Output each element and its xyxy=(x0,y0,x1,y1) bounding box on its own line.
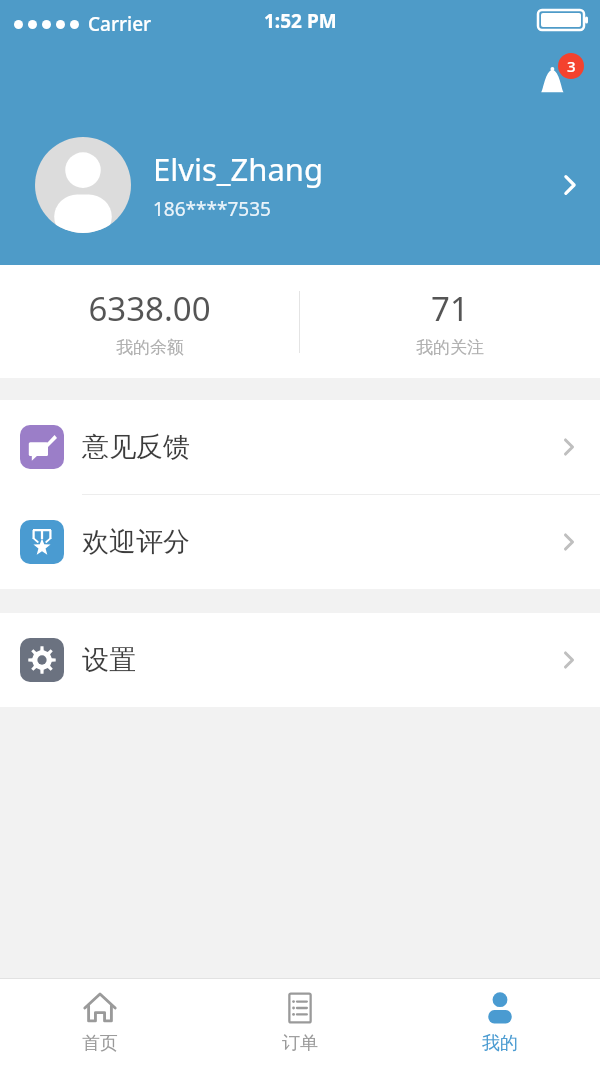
staticText: 欢迎评分 xyxy=(82,525,190,559)
staticText: 设置 xyxy=(82,643,136,677)
staticText: 意见反馈 xyxy=(82,430,190,464)
button[interactable]: Notifications xyxy=(530,53,586,109)
staticText: Elvis_Zhang xyxy=(153,148,324,190)
staticText: 我的 xyxy=(482,1032,518,1055)
staticText: 首页 xyxy=(82,1032,118,1055)
button[interactable]: 71 xyxy=(300,286,600,358)
button[interactable]: 首页 xyxy=(0,978,200,1065)
staticText: 1:52 PM xyxy=(264,8,337,34)
staticText: 71 xyxy=(431,286,469,331)
staticText: 3 xyxy=(567,56,576,76)
button[interactable]: 订单 xyxy=(200,978,400,1065)
staticText: 我的余额 xyxy=(116,337,184,358)
staticText: Carrier xyxy=(88,11,152,37)
button[interactable]: 6338.00 xyxy=(0,286,299,358)
staticText: 186****7535 xyxy=(153,196,271,222)
button[interactable]: Elvis_Zhang xyxy=(0,125,600,245)
button[interactable]: 意见反馈 xyxy=(0,400,600,494)
staticText: 6338.00 xyxy=(88,286,211,331)
staticText: 订单 xyxy=(282,1032,318,1055)
button[interactable]: 我的 xyxy=(400,978,600,1065)
button[interactable]: 设置 xyxy=(0,613,600,707)
button[interactable]: 欢迎评分 xyxy=(0,495,600,589)
staticText: 我的关注 xyxy=(416,337,484,358)
